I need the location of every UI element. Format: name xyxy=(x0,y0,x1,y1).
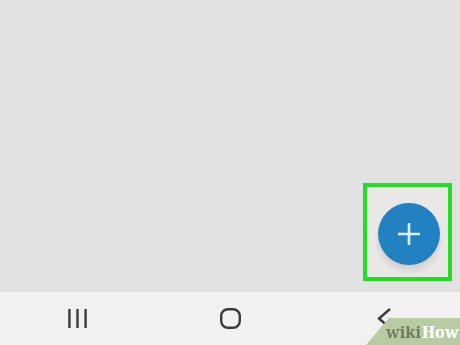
button[interactable]: Add xyxy=(378,203,440,265)
button[interactable]: Back xyxy=(307,292,460,345)
button[interactable]: Home xyxy=(154,292,307,345)
button[interactable]: Recent apps xyxy=(0,292,154,345)
staticText: wiki xyxy=(386,321,422,343)
staticText: How xyxy=(422,321,459,343)
